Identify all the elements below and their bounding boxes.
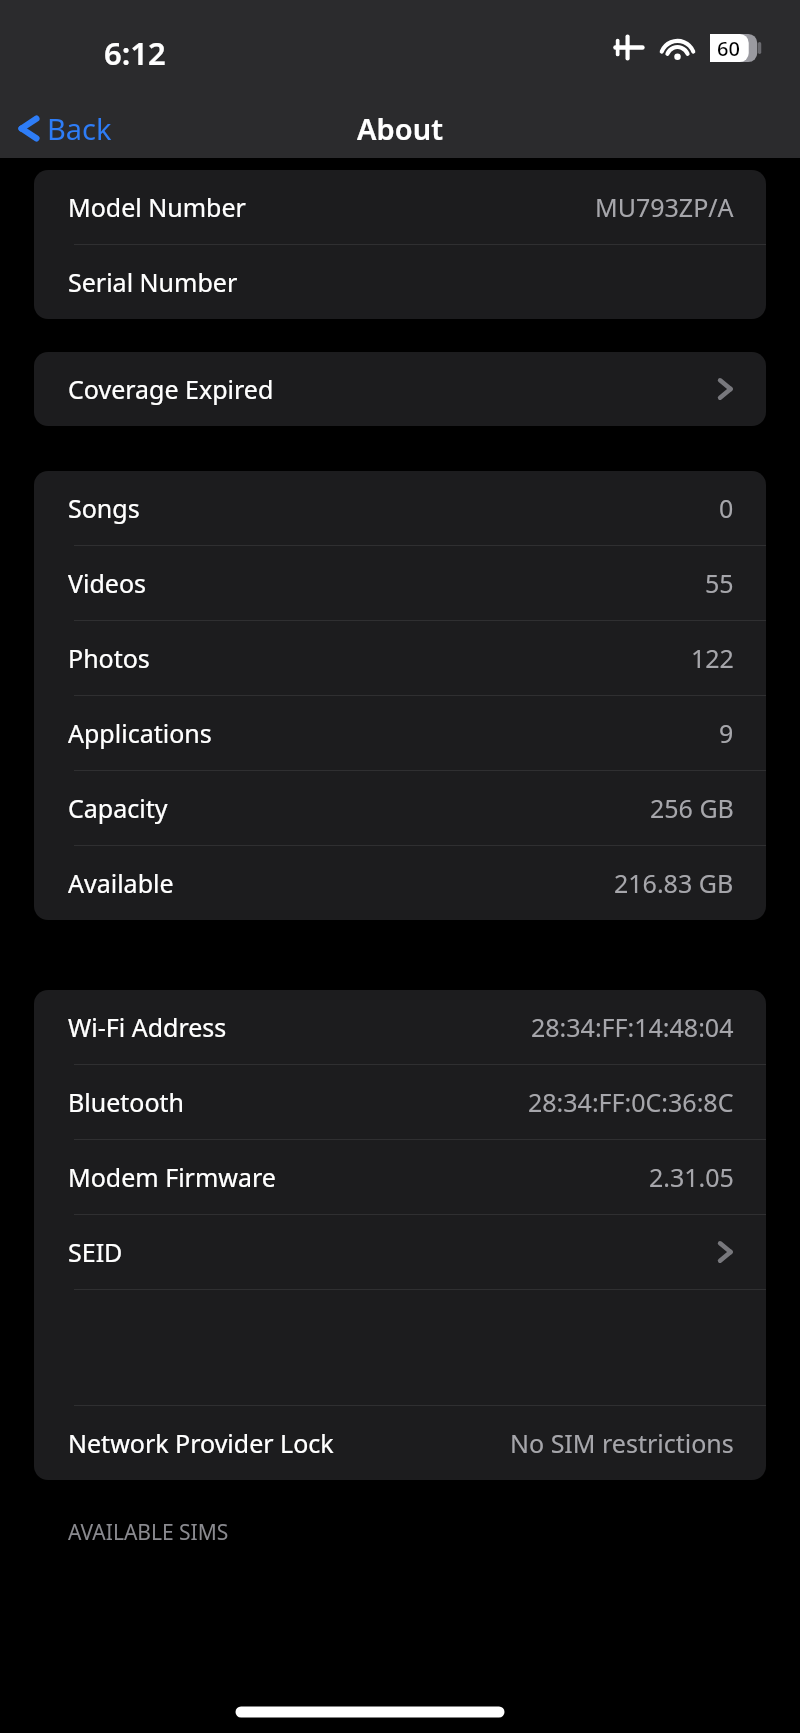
staticText: 28:34:FF:14:48:04 [531,1010,734,1044]
staticText: Bluetooth [68,1085,185,1119]
other: Wi-Fi [660,35,695,61]
staticText: About [357,109,443,148]
button[interactable]: Available [34,846,766,920]
staticText: No SIM restrictions [510,1426,734,1460]
staticText: Back [47,109,112,148]
button[interactable]: Photos [34,621,766,696]
staticText: 6:12 [104,32,166,74]
button[interactable]: Bluetooth [34,1065,766,1140]
button[interactable]: Capacity [34,771,766,846]
staticText: Modem Firmware [68,1160,276,1194]
button[interactable]: Coverage Expired [34,352,766,426]
staticText: Capacity [68,791,168,825]
staticText: Songs [68,491,140,525]
staticText: Photos [68,641,150,675]
staticText: Network Provider Lock [68,1426,334,1460]
staticText: 216.83 GB [614,866,734,900]
button[interactable]: Serial Number [34,245,766,319]
staticText: MU793ZP/A [595,190,734,224]
staticText: Coverage Expired [68,372,274,406]
staticText: Wi-Fi Address [68,1010,227,1044]
staticText: Available [68,866,174,900]
staticText: 122 [691,641,734,675]
button[interactable]: Back [0,103,122,154]
staticText: SEID [68,1235,123,1269]
button[interactable]: Videos [34,546,766,621]
button[interactable]: Wi-Fi Address [34,990,766,1065]
other: Battery 60 percent [710,34,764,62]
staticText: 60 [717,35,740,62]
staticText: Applications [68,716,212,750]
other: Airplane mode [613,33,644,62]
staticText: AVAILABLE SIMS [68,1518,229,1547]
staticText: 55 [705,566,734,600]
button[interactable]: SEID [34,1215,766,1290]
staticText: 256 GB [650,791,734,825]
staticText: Videos [68,566,147,600]
staticText: 0 [719,491,734,525]
staticText: 9 [719,716,734,750]
staticText: 28:34:FF:0C:36:8C [528,1085,734,1119]
staticText: 2.31.05 [649,1160,734,1194]
staticText: Serial Number [68,265,238,299]
button[interactable]: Model Number [34,170,766,245]
button[interactable]: Network Provider Lock [34,1406,766,1480]
button[interactable]: Songs [34,471,766,546]
staticText: Model Number [68,190,246,224]
button[interactable]: Modem Firmware [34,1140,766,1215]
button[interactable]: Applications [34,696,766,771]
